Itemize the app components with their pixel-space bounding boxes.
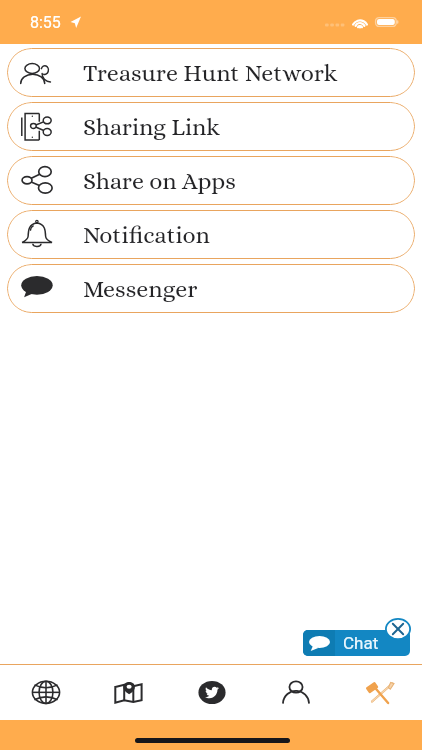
staticText: Sharing Link: [83, 113, 220, 140]
button[interactable]: Profile: [254, 665, 338, 720]
staticText: Notification: [83, 221, 210, 248]
button[interactable]: Notification: [7, 210, 415, 259]
button[interactable]: Map: [87, 665, 170, 720]
button[interactable]: Sharing Link: [7, 102, 415, 151]
button[interactable]: Chat: [303, 630, 410, 656]
staticText: Messenger: [83, 275, 198, 302]
staticText: 8:55: [30, 13, 61, 32]
button[interactable]: Messenger: [7, 264, 415, 313]
button[interactable]: Share on Apps: [7, 156, 415, 205]
button[interactable]: Explore: [4, 665, 87, 720]
staticText: Chat: [343, 633, 379, 653]
button[interactable]: Twitter: [170, 665, 254, 720]
button[interactable]: Tools: [338, 665, 422, 720]
staticText: Treasure Hunt Network: [83, 59, 338, 86]
button[interactable]: Close chat: [385, 618, 411, 640]
staticText: Share on Apps: [83, 167, 236, 194]
button[interactable]: Treasure Hunt Network: [7, 48, 415, 97]
